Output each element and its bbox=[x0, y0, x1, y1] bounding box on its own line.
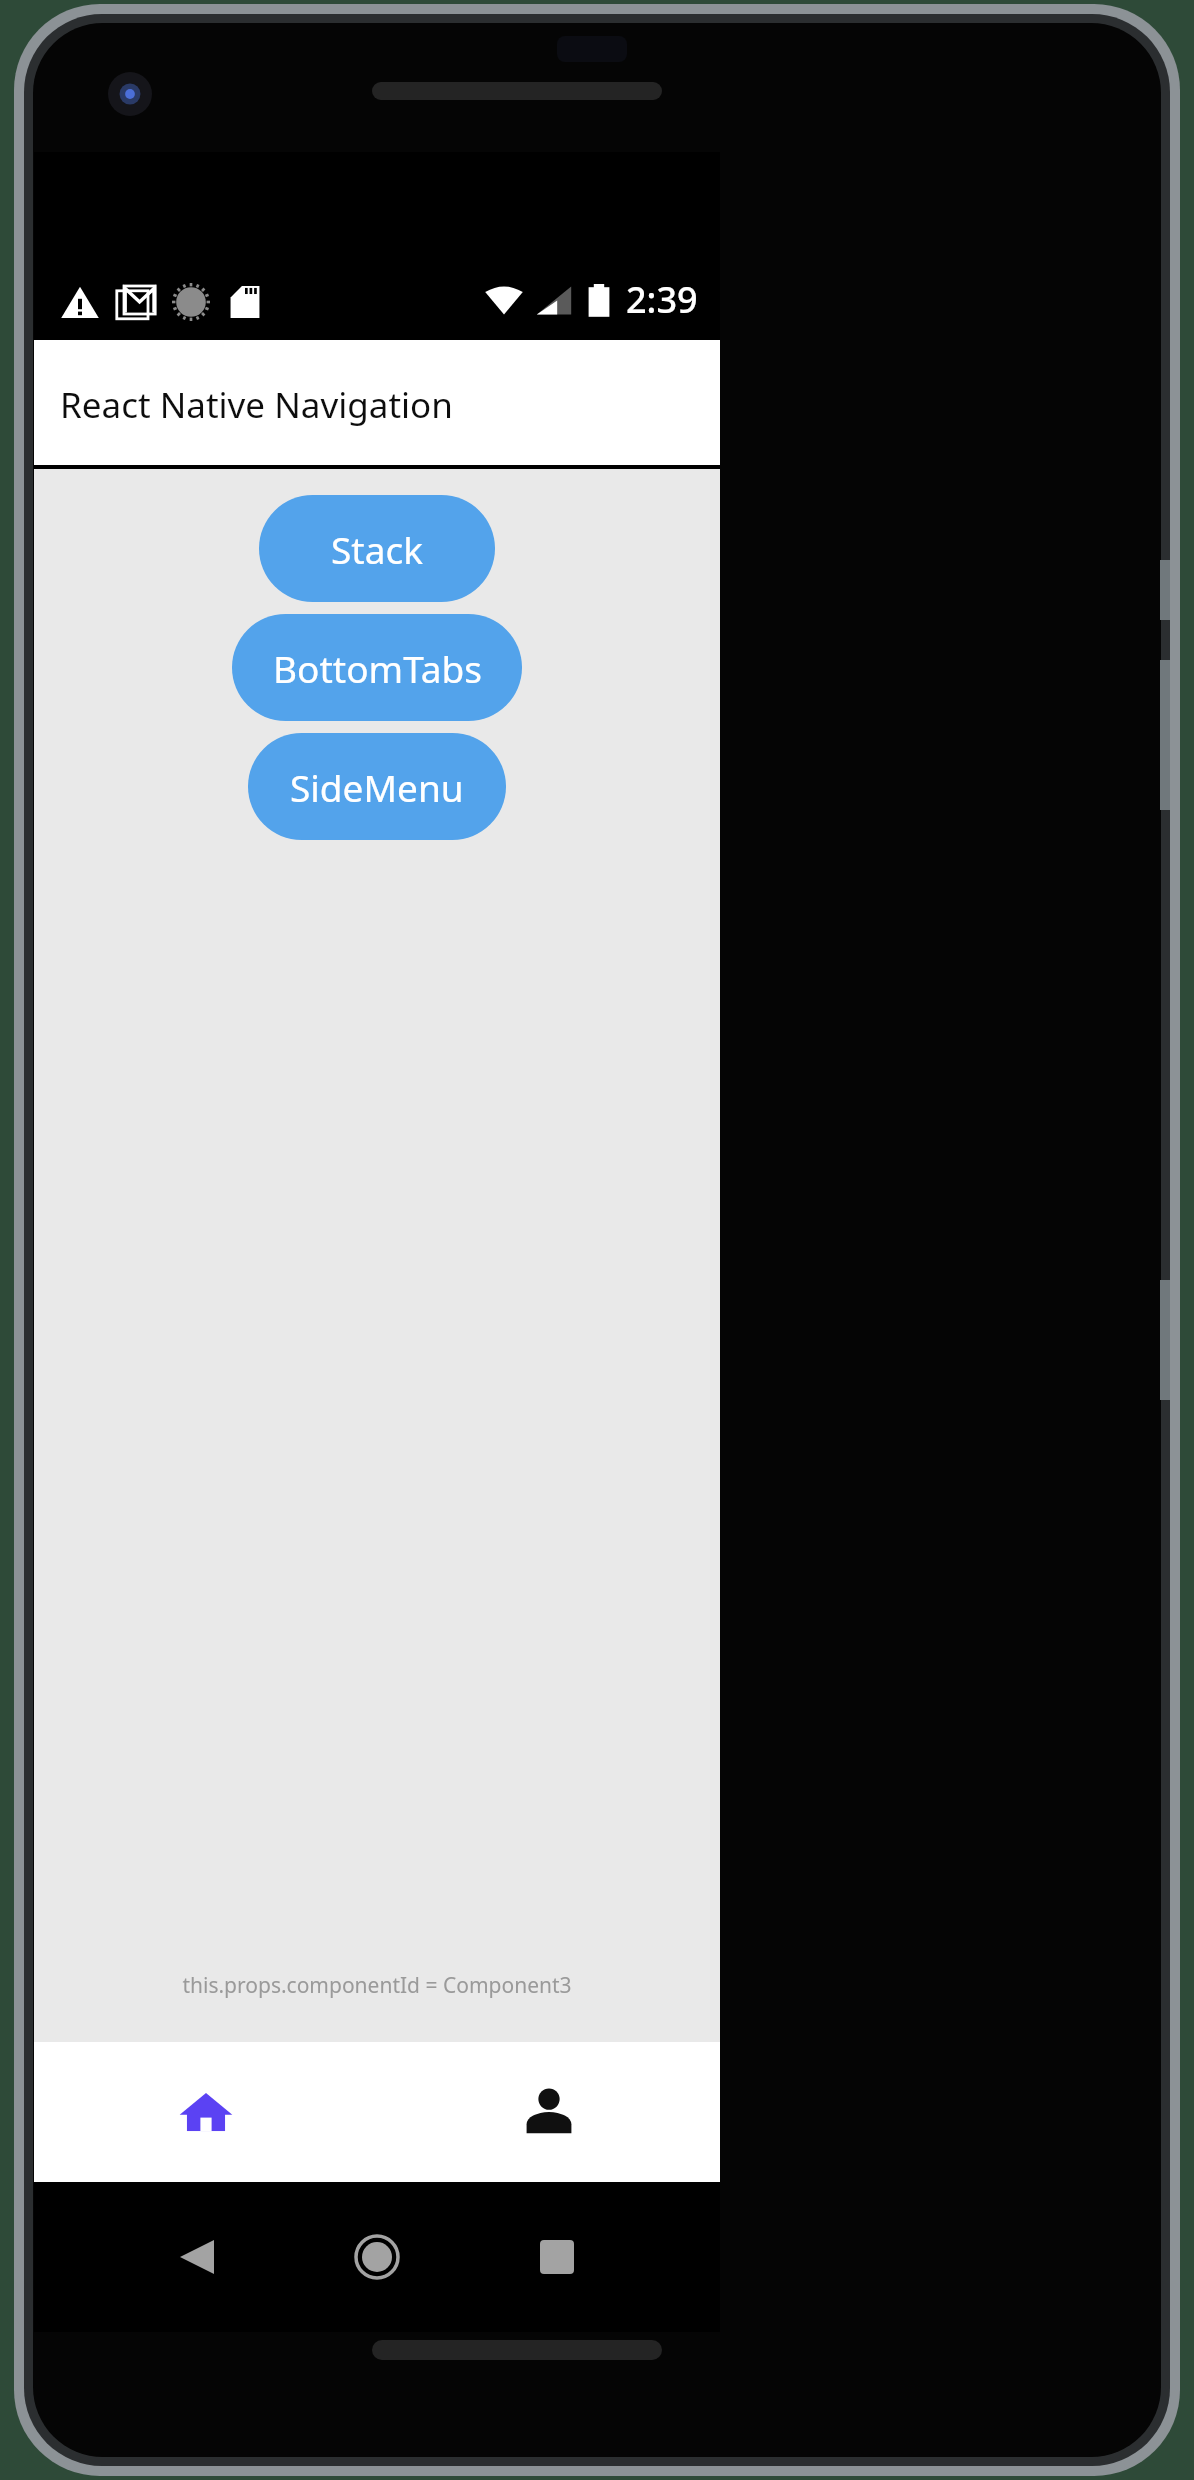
staticText: BottomTabs bbox=[273, 643, 482, 693]
button[interactable]: Home bbox=[332, 2212, 422, 2302]
button[interactable]: SideMenu bbox=[248, 733, 506, 840]
button[interactable]: Home tab bbox=[34, 2042, 377, 2182]
button[interactable]: Profile tab bbox=[377, 2042, 720, 2182]
staticText: this.props.componentId = Component3 bbox=[34, 1971, 720, 2000]
staticText: Stack bbox=[331, 524, 423, 574]
button[interactable]: Recent apps bbox=[512, 2212, 602, 2302]
staticText: 2:39 bbox=[626, 275, 698, 324]
button[interactable]: BottomTabs bbox=[232, 614, 522, 721]
button[interactable]: Back bbox=[152, 2212, 242, 2302]
staticText: SideMenu bbox=[290, 762, 464, 812]
button[interactable]: Stack bbox=[259, 495, 495, 602]
staticText: React Native Navigation bbox=[60, 381, 453, 429]
